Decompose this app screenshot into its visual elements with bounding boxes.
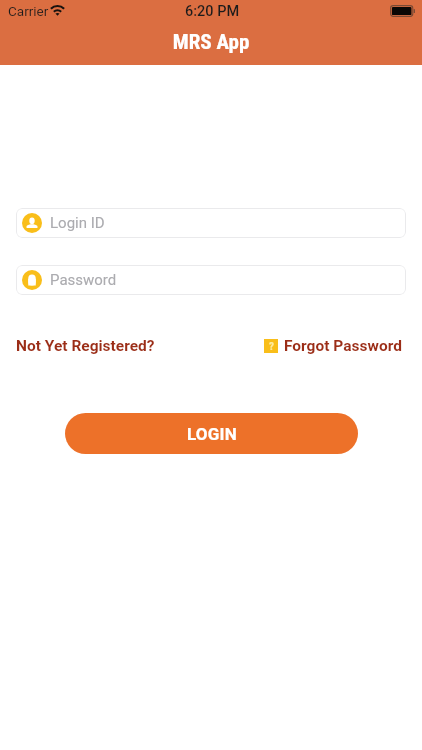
staticText: 6:20 PM [185, 3, 240, 20]
other: Battery [390, 5, 415, 17]
button[interactable]: Login ID [16, 208, 406, 238]
staticText: Password [50, 271, 117, 289]
staticText: ? [269, 340, 274, 353]
staticText: LOGIN [187, 424, 237, 444]
staticText: Login ID [50, 214, 105, 232]
staticText: Carrier [8, 3, 49, 19]
staticText: Not Yet Registered? [16, 337, 155, 355]
staticText: Forgot Password [284, 337, 402, 355]
button[interactable]: Not Yet Registered? [16, 337, 155, 355]
button[interactable]: ? [264, 337, 402, 355]
staticText: MRS App [0, 30, 422, 55]
button[interactable]: Password [16, 265, 406, 295]
button[interactable]: LOGIN [65, 413, 358, 454]
